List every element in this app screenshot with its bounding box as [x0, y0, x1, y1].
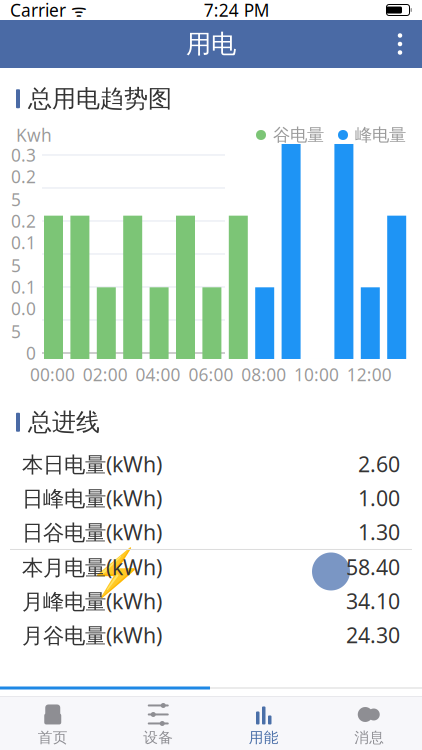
staticText: 1.00 — [358, 484, 400, 512]
button[interactable]: 首页 — [0, 701, 105, 749]
staticText: 0 — [26, 341, 36, 364]
staticText: 7:24 PM — [204, 0, 270, 21]
staticText: 0.25 — [11, 165, 36, 211]
staticText: 谷电量 — [273, 124, 324, 146]
button[interactable]: 本日电量(kWh) — [0, 447, 422, 481]
staticText: 本月电量(kWh) — [22, 553, 162, 581]
button[interactable]: 月峰电量(kWh) — [0, 584, 422, 618]
staticText: 0.3 — [11, 143, 36, 166]
staticText: 总进线 — [28, 407, 100, 437]
button[interactable]: 用能 — [211, 701, 316, 749]
staticText: 02:00 — [83, 363, 128, 386]
staticText: 34.10 — [346, 587, 400, 615]
staticText: 设备 — [143, 728, 173, 746]
staticText: 04:00 — [136, 363, 181, 386]
button[interactable]: More options — [378, 22, 422, 66]
button[interactable]: 设备 — [105, 701, 211, 749]
staticText: 首页 — [38, 728, 68, 746]
staticText: 2.60 — [358, 450, 400, 478]
staticText: 总用电趋势图 — [28, 84, 172, 113]
staticText: 58.40 — [346, 553, 400, 581]
staticText: 24.30 — [346, 621, 400, 649]
staticText: 06:00 — [188, 363, 233, 386]
staticText: 08:00 — [241, 363, 286, 386]
staticText: ⚡ — [88, 547, 144, 598]
staticText: 12:00 — [347, 363, 392, 386]
button[interactable]: 本月电量(kWh) — [0, 550, 422, 584]
staticText: 日谷电量(kWh) — [22, 518, 162, 546]
staticText: 00:00 — [30, 363, 75, 386]
staticText: 消息 — [354, 728, 384, 746]
staticText: 用电 — [186, 28, 236, 59]
staticText: ᯤ — [66, 0, 87, 21]
staticText: 0.05 — [11, 297, 36, 343]
staticText: 0.1 — [11, 275, 36, 298]
staticText: Carrier — [10, 0, 66, 21]
staticText: Kwh — [16, 123, 52, 146]
staticText: 10:00 — [294, 363, 339, 386]
button[interactable]: 日峰电量(kWh) — [0, 481, 422, 515]
button[interactable]: 月谷电量(kWh) — [0, 618, 422, 652]
button[interactable]: 消息 — [316, 701, 422, 749]
staticText: 本日电量(kWh) — [22, 450, 162, 478]
staticText: 日峰电量(kWh) — [22, 484, 162, 512]
staticText: 月谷电量(kWh) — [22, 621, 162, 649]
staticText: 月峰电量(kWh) — [22, 587, 162, 615]
staticText: 用能 — [249, 728, 279, 746]
staticText: 0.2 — [11, 209, 36, 232]
staticText: 1.30 — [358, 518, 400, 546]
staticText: 0.15 — [11, 231, 36, 277]
button[interactable]: 日谷电量(kWh) — [0, 515, 422, 549]
staticText: 峰电量 — [355, 124, 406, 146]
